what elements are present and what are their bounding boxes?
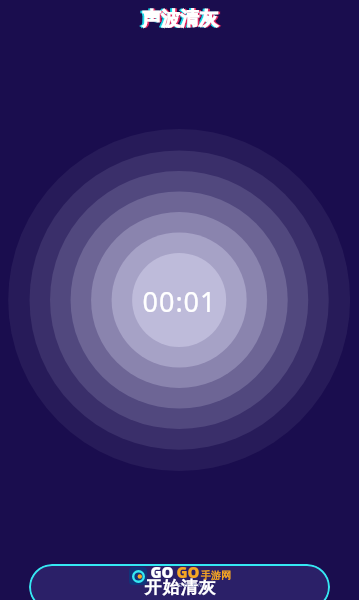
staticText: 开始清灰 bbox=[144, 577, 216, 598]
staticText: 00:01 bbox=[142, 283, 217, 320]
staticText: GO bbox=[176, 562, 200, 582]
staticText: 声波清灰 bbox=[144, 7, 220, 31]
staticText: GO bbox=[150, 562, 174, 582]
button[interactable]: 开始清灰 bbox=[29, 564, 330, 600]
staticText: GO.CN bbox=[178, 582, 204, 589]
staticText: 声波清灰 bbox=[140, 7, 216, 31]
staticText: 手游网 bbox=[201, 569, 231, 582]
other: GOGO watermark bbox=[129, 562, 231, 589]
staticText: 声波清灰 bbox=[142, 7, 218, 31]
